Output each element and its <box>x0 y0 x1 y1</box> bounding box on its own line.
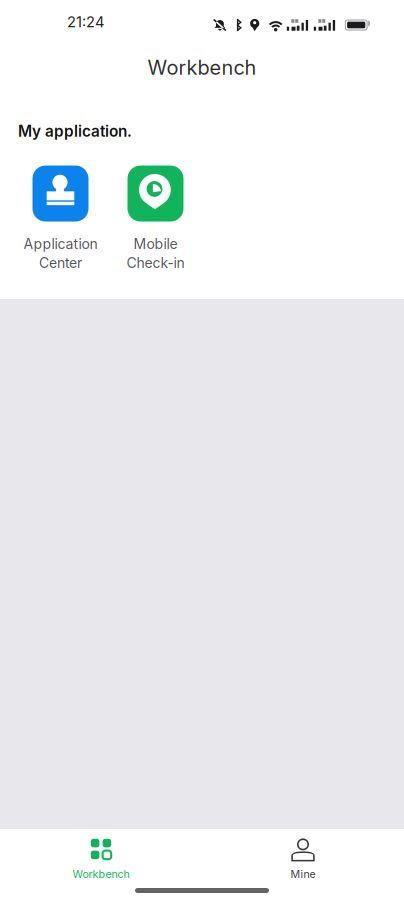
button[interactable]: Workbench <box>0 828 202 880</box>
staticText: Mobile <box>133 236 177 252</box>
staticText: Application <box>23 236 97 252</box>
button[interactable]: Mobile <box>108 166 203 271</box>
staticText: Center <box>39 254 82 271</box>
staticText: 21:24 <box>67 13 104 31</box>
button[interactable]: Application <box>13 166 108 271</box>
staticText: Workbench <box>72 867 129 880</box>
staticText: Check-in <box>126 254 184 271</box>
button[interactable]: Mine <box>202 828 404 880</box>
staticText: Mine <box>290 867 315 880</box>
staticText: My application. <box>18 122 132 141</box>
staticText: Workbench <box>147 55 256 80</box>
